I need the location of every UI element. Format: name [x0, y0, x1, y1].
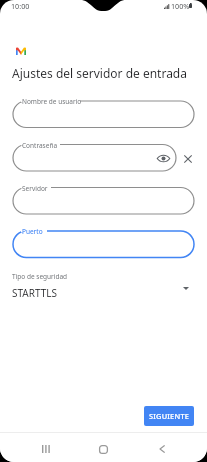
button[interactable]: Atrás — [144, 438, 179, 460]
staticText: 10:00 — [11, 1, 30, 11]
staticText: Tipo de seguridad — [12, 272, 68, 281]
staticText: Ajustes del servidor de entrada — [12, 65, 187, 81]
staticText: Nombre de usuario — [22, 97, 82, 106]
button[interactable]: Mostrar contraseña — [156, 151, 171, 166]
button[interactable]: Inicio — [86, 438, 121, 460]
staticText: Puerto — [22, 227, 43, 236]
staticText: 100% — [171, 1, 190, 11]
button[interactable]: SIGUIENTE — [144, 406, 194, 426]
staticText: Contraseña — [22, 141, 58, 150]
staticText: STARTTLS — [12, 286, 58, 300]
button[interactable]: Tipo de seguridad — [12, 272, 195, 299]
button[interactable]: Borrar — [181, 152, 195, 166]
button[interactable]: Recientes — [28, 438, 63, 460]
staticText: Servidor — [22, 184, 48, 193]
staticText: SIGUIENTE — [149, 411, 190, 421]
